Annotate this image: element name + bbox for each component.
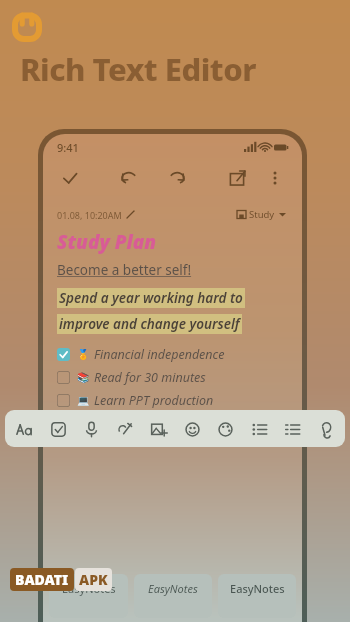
- staticText: Become a better self!: [57, 261, 192, 279]
- button[interactable]: EasyNotes: [218, 574, 296, 618]
- staticText: 01.08, 10:20AM: [57, 209, 122, 221]
- staticText: Spend a year working hard to: [59, 289, 243, 307]
- staticText: EasyNotes: [230, 581, 285, 596]
- staticText: 📚: [77, 372, 90, 384]
- button[interactable]: Share: [223, 164, 251, 192]
- staticText: 💻: [77, 395, 90, 407]
- staticText: APK: [79, 570, 108, 589]
- button[interactable]: Insert image: [144, 415, 172, 443]
- button[interactable]: Attach: [312, 415, 340, 443]
- staticText: Rich Text Editor: [20, 48, 256, 90]
- staticText: Financial independence: [94, 346, 225, 363]
- button[interactable]: Save: [56, 164, 84, 192]
- staticText: EasyNotes: [148, 581, 198, 596]
- staticText: 🏅: [77, 349, 90, 361]
- button[interactable]: Text style: [10, 415, 38, 443]
- staticText: BADATI: [15, 570, 69, 589]
- button[interactable]: Bullet list: [245, 415, 273, 443]
- staticText: Learn PPT production: [94, 392, 214, 409]
- staticText: 9:41: [57, 140, 79, 155]
- staticText: improve and change yourself: [59, 315, 240, 333]
- button[interactable]: 📚: [57, 369, 288, 386]
- button[interactable]: Draw: [111, 415, 139, 443]
- button[interactable]: Undo: [115, 164, 143, 192]
- button[interactable]: Voice: [77, 415, 105, 443]
- button[interactable]: Checklist: [44, 415, 72, 443]
- button[interactable]: EasyNotes: [49, 574, 128, 618]
- button[interactable]: Study: [235, 206, 288, 223]
- button[interactable]: More options: [261, 164, 289, 192]
- button[interactable]: Colors: [211, 415, 239, 443]
- staticText: EasyNotes: [62, 581, 116, 596]
- button[interactable]: Redo: [163, 164, 191, 192]
- button[interactable]: 💻: [57, 392, 288, 409]
- button[interactable]: 🏅: [57, 346, 288, 363]
- button[interactable]: Emoji: [178, 415, 206, 443]
- staticText: Read for 30 minutes: [94, 369, 206, 386]
- staticText: Study Plan: [57, 229, 157, 255]
- button[interactable]: Numbered list: [278, 415, 306, 443]
- button[interactable]: EasyNotes: [134, 574, 212, 618]
- staticText: Study: [249, 208, 275, 221]
